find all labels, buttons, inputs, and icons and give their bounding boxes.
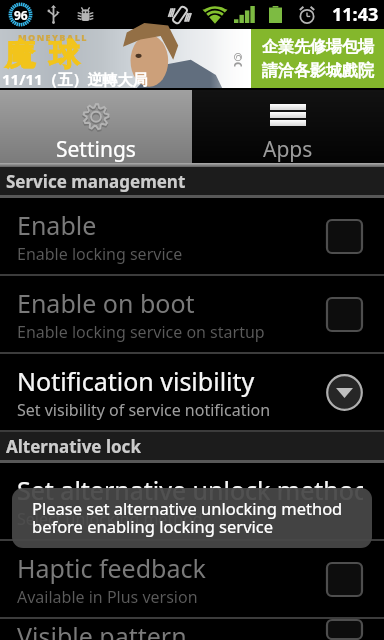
button[interactable]: Visible pattern [0, 619, 384, 640]
staticText: 企業先修場包場 [262, 37, 374, 57]
button[interactable]: Notification visibility [0, 354, 384, 430]
staticText: Select unlocking method [17, 508, 203, 530]
button[interactable]: Enable on boot [0, 276, 384, 352]
button[interactable]: ©CTMG [0, 29, 384, 88]
staticText: Settings [56, 135, 136, 164]
staticText: Please set alternative unlocking method … [32, 497, 343, 538]
staticText: MONEYBALL [18, 31, 88, 43]
staticText: 請洽各影城戲院 [262, 61, 374, 81]
button[interactable]: Checkbox [326, 619, 363, 640]
button[interactable]: Expand notification visibility [326, 374, 363, 411]
button[interactable]: Enable [0, 198, 384, 274]
staticText: ©CTMG [230, 52, 245, 66]
staticText: Visible pattern [17, 619, 187, 640]
button[interactable]: Checkbox [326, 297, 363, 332]
staticText: 96 [14, 7, 28, 23]
button[interactable]: Checkbox [326, 219, 363, 254]
button[interactable]: Checkbox [326, 562, 363, 597]
staticText: Alternative lock [6, 435, 141, 458]
staticText: 11/11（五）逆轉大局 [2, 69, 148, 89]
staticText: Service management [6, 170, 186, 193]
button[interactable]: Set alternative unlock method [0, 463, 384, 539]
staticText: Set visibility of service notification [17, 399, 271, 421]
button[interactable]: Settings [0, 90, 192, 163]
staticText: Haptic feedback [17, 551, 206, 585]
staticText: 魔 球 [5, 33, 82, 74]
staticText: Enable locking service [17, 243, 183, 265]
button[interactable]: Haptic feedback [0, 541, 384, 617]
staticText: Enable locking service on startup [17, 321, 265, 343]
staticText: Enable [17, 208, 97, 242]
button[interactable]: Apps [192, 90, 384, 163]
staticText: 11:43 [332, 2, 379, 27]
staticText: Set alternative unlock method [17, 473, 363, 507]
staticText: Available in Plus version [17, 586, 198, 608]
staticText: Enable on boot [17, 286, 195, 320]
staticText: Notification visibility [17, 364, 255, 398]
staticText: Apps [263, 135, 313, 164]
